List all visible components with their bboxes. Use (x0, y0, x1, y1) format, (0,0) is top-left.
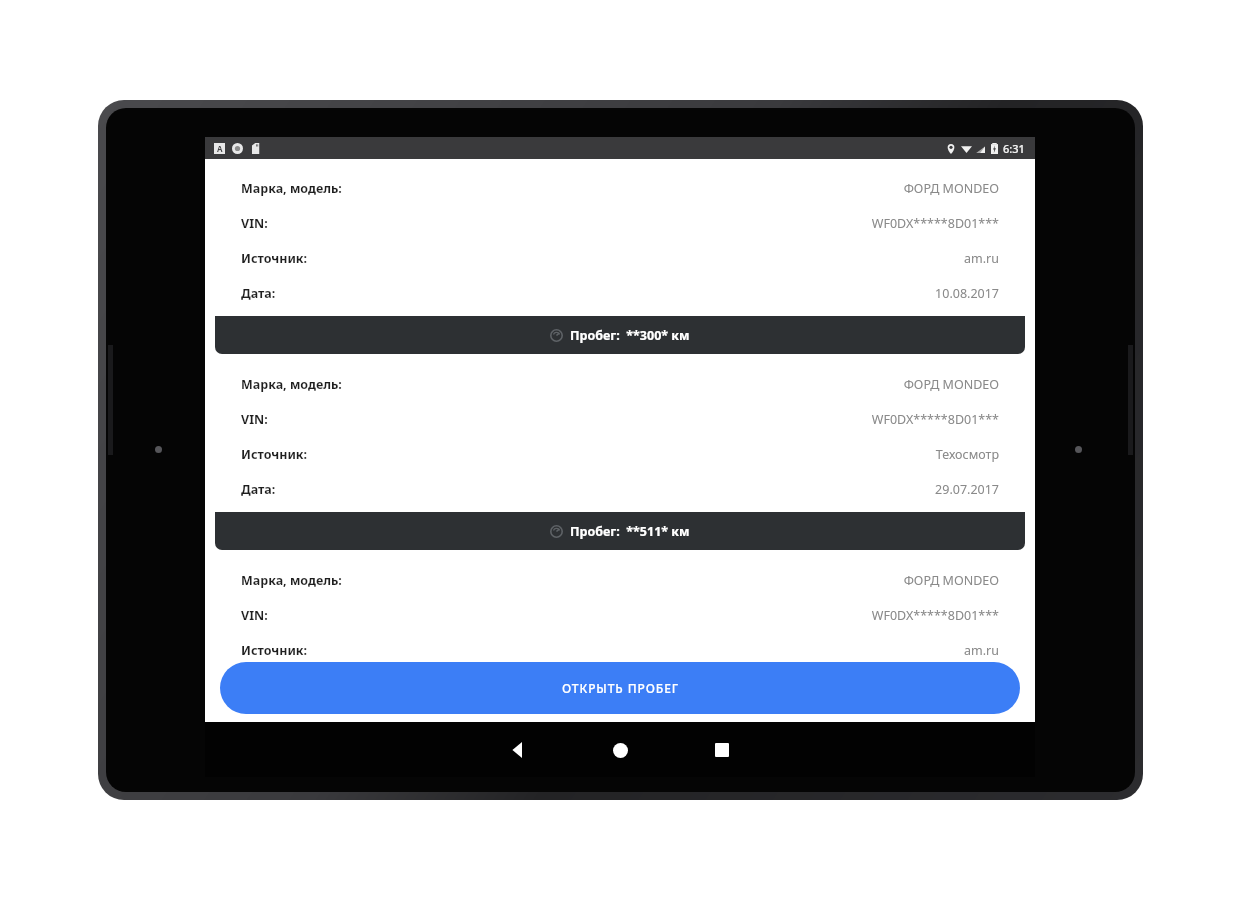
staticText: Техосмотр (935, 446, 999, 463)
button[interactable]: Recent apps (695, 723, 749, 777)
staticText: VIN: (241, 411, 268, 428)
button[interactable]: Home (593, 723, 647, 777)
button[interactable]: Back (491, 723, 545, 777)
staticText: Пробег: **511* км (570, 523, 690, 540)
staticText: Источник: (241, 642, 308, 659)
button[interactable]: Марка, модель: (215, 558, 1025, 722)
staticText: VIN: (241, 607, 268, 624)
staticText: Источник: (241, 250, 308, 267)
staticText: Источник: (241, 446, 308, 463)
button[interactable]: ОТКРЫТЬ ПРОБЕГ (220, 662, 1020, 714)
button[interactable]: Марка, модель: (215, 166, 1025, 354)
staticText: 29.07.2017 (935, 481, 999, 498)
staticText: Дата: (241, 481, 276, 498)
staticText: Марка, модель: (241, 572, 342, 589)
staticText: Марка, модель: (241, 376, 342, 393)
staticText: ОТКРЫТЬ ПРОБЕГ (562, 680, 679, 696)
staticText: WF0DX*****8D01*** (871, 607, 999, 624)
staticText: Марка, модель: (241, 180, 342, 197)
staticText: Дата: (241, 285, 276, 302)
staticText: am.ru (964, 642, 999, 659)
staticText: VIN: (241, 215, 268, 232)
staticText: ФОРД MONDEO (903, 572, 999, 589)
staticText: Пробег: **300* км (570, 327, 690, 344)
staticText: ФОРД MONDEO (903, 376, 999, 393)
staticText: 10.08.2017 (935, 285, 999, 302)
staticText: am.ru (964, 250, 999, 267)
staticText: ФОРД MONDEO (903, 180, 999, 197)
staticText: WF0DX*****8D01*** (871, 215, 999, 232)
staticText: 6:31 (1003, 141, 1025, 156)
staticText: WF0DX*****8D01*** (871, 411, 999, 428)
staticText: A (217, 143, 223, 154)
button[interactable]: Марка, модель: (215, 362, 1025, 550)
